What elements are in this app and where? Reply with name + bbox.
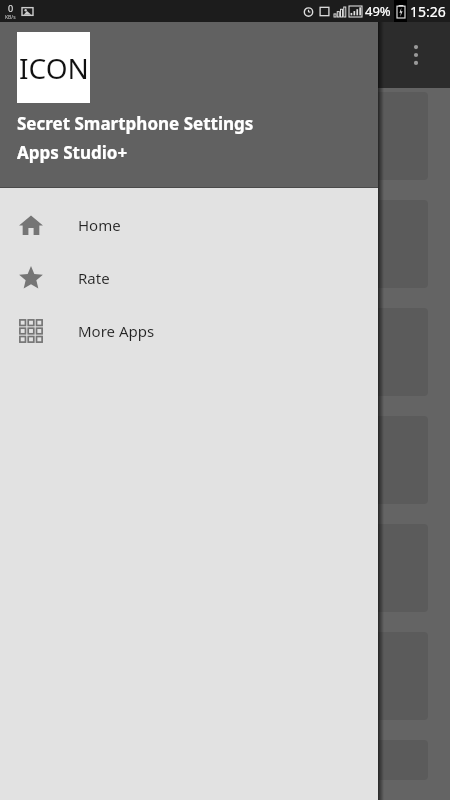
staticText: 49% [365, 2, 391, 20]
staticText: Secret Smartphone Settings [17, 112, 254, 135]
button[interactable]: ns [14, 92, 428, 180]
button[interactable] [14, 524, 428, 612]
button[interactable]: Rate [0, 251, 378, 304]
button[interactable]: More Apps [0, 304, 378, 357]
button[interactable]: R [14, 200, 428, 288]
staticText: 0 [8, 2, 14, 14]
staticText: More Apps [78, 321, 155, 341]
button[interactable]: m [14, 740, 428, 780]
staticText: KB/s [5, 14, 16, 21]
button[interactable] [14, 308, 428, 396]
button[interactable]: Home [0, 198, 378, 251]
button[interactable]: More options [396, 35, 436, 75]
staticText: R [24, 230, 38, 259]
staticText: Rate [78, 268, 110, 288]
staticText: Apps Studio+ [17, 141, 128, 164]
staticText: Home [78, 215, 121, 235]
staticText: ICON [19, 49, 89, 87]
staticText: 15:26 [410, 2, 446, 21]
button[interactable]: s [14, 632, 428, 720]
staticText: ns [24, 122, 49, 151]
button[interactable] [14, 416, 428, 504]
